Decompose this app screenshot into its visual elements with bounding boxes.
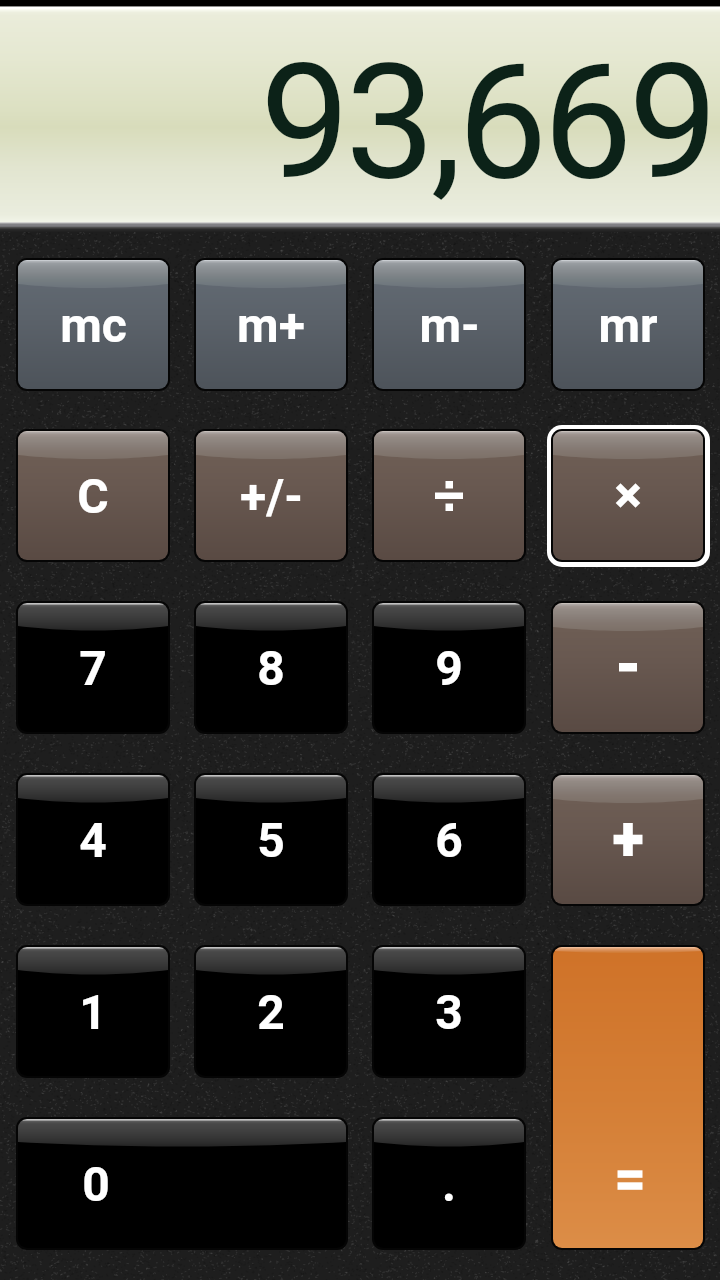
button[interactable]: +/-	[189, 424, 353, 567]
button[interactable]: 5	[189, 768, 353, 911]
button[interactable]: .	[367, 1112, 531, 1255]
button[interactable]: 9	[367, 596, 531, 739]
button[interactable]: Divide	[367, 424, 531, 567]
staticText: 4	[79, 812, 107, 868]
staticText: m+	[237, 297, 305, 353]
staticText: 2	[257, 984, 285, 1040]
button[interactable]: mr	[546, 253, 710, 396]
staticText: 93,669	[260, 29, 714, 217]
button[interactable]: 1	[11, 940, 175, 1083]
button[interactable]: Multiply	[546, 424, 710, 567]
staticText: 7	[79, 640, 107, 696]
staticText: 5	[257, 812, 285, 868]
button[interactable]: 7	[11, 596, 175, 739]
staticText: 1	[79, 984, 107, 1040]
button[interactable]: m-	[367, 253, 531, 396]
button[interactable]: m+	[189, 253, 353, 396]
staticText: 0	[82, 1156, 110, 1212]
button[interactable]: mc	[11, 253, 175, 396]
staticText: +/-	[240, 468, 303, 524]
staticText: mr	[598, 297, 658, 353]
button[interactable]: Minus	[546, 596, 710, 739]
button[interactable]: 6	[367, 768, 531, 911]
staticText: 3	[435, 984, 463, 1040]
button[interactable]: 0	[11, 1112, 353, 1255]
staticText: .	[442, 1156, 456, 1212]
button[interactable]: 8	[189, 596, 353, 739]
staticText: 6	[435, 812, 463, 868]
staticText: 8	[257, 640, 285, 696]
staticText: 9	[435, 640, 463, 696]
button[interactable]: 4	[11, 768, 175, 911]
button[interactable]: C	[11, 424, 175, 567]
staticText: C	[77, 468, 109, 524]
button[interactable]: 3	[367, 940, 531, 1083]
button[interactable]: Equals	[546, 940, 710, 1255]
button[interactable]: Plus	[546, 768, 710, 911]
staticText: mc	[60, 297, 127, 353]
staticText: m-	[419, 297, 480, 353]
button[interactable]: 2	[189, 940, 353, 1083]
